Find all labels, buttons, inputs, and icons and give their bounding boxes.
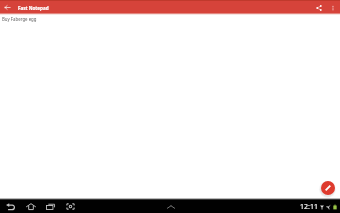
button[interactable]: New note — [321, 181, 335, 195]
button[interactable]: Share — [312, 1, 326, 14]
button[interactable]: Navigate up — [0, 1, 14, 14]
button[interactable]: Recent apps — [44, 200, 57, 213]
button[interactable]: Home — [24, 200, 37, 213]
button[interactable]: More options — [326, 1, 340, 14]
button[interactable]: Screenshot — [64, 200, 77, 213]
staticText: Fast Notepad — [18, 5, 49, 11]
button[interactable]: Back — [4, 200, 17, 213]
button[interactable]: Show notifications — [164, 200, 177, 213]
staticText: 12:11 — [300, 202, 318, 212]
staticText: Buy Faberge egg — [2, 16, 37, 22]
